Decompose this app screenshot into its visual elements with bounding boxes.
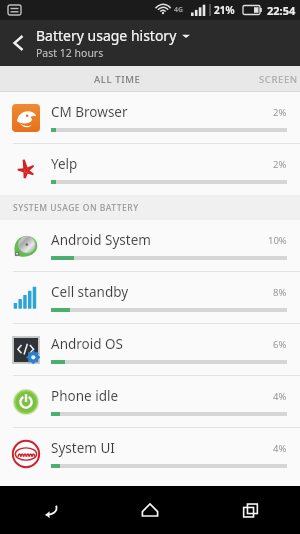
staticText: ALL TIME — [94, 73, 141, 86]
staticText: Phone idle — [51, 387, 273, 405]
staticText: 4G — [174, 5, 184, 15]
staticText: 4% — [273, 390, 287, 403]
staticText: 10% — [268, 234, 287, 247]
button[interactable]: Home — [100, 486, 200, 534]
staticText: Battery usage history — [36, 26, 177, 45]
button[interactable]: ALL TIME — [0, 66, 234, 92]
staticText: Android OS — [51, 335, 273, 353]
button[interactable]: Android System — [0, 220, 300, 271]
button[interactable]: CM Browser — [0, 92, 300, 143]
button[interactable]: System UI — [0, 428, 300, 479]
staticText: SCREEN — [259, 73, 298, 86]
button[interactable]: Back — [0, 20, 36, 66]
staticText: System UI — [51, 439, 273, 457]
staticText: Past 12 hours — [36, 46, 104, 60]
staticText: CM Browser — [51, 103, 273, 121]
staticText: 21% — [214, 3, 235, 17]
button[interactable]: Android OS — [0, 324, 300, 375]
staticText: 4% — [273, 442, 287, 455]
staticText: 2% — [273, 158, 287, 171]
button[interactable]: Phone idle — [0, 376, 300, 427]
staticText: 8% — [273, 286, 287, 299]
button[interactable]: Back — [0, 486, 100, 534]
staticText: Yelp — [51, 155, 273, 173]
staticText: 6% — [273, 338, 287, 351]
button[interactable]: Battery usage history — [36, 20, 300, 66]
button[interactable]: Cell standby — [0, 272, 300, 323]
button[interactable]: SCREEN — [259, 66, 300, 92]
button[interactable]: Yelp — [0, 144, 300, 195]
staticText: Android System — [51, 231, 268, 249]
staticText: 2% — [273, 106, 287, 119]
staticText: Cell standby — [51, 283, 273, 301]
staticText: SYSTEM USAGE ON BATTERY — [13, 202, 139, 214]
button[interactable]: Recent apps — [200, 486, 300, 534]
staticText: 22:54 — [267, 3, 296, 18]
